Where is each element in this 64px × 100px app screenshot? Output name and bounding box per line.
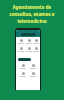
button[interactable] <box>29 72 37 77</box>
button[interactable] <box>25 39 33 44</box>
button[interactable] <box>21 33 36 36</box>
button[interactable] <box>18 58 31 61</box>
button[interactable] <box>17 47 25 52</box>
button[interactable] <box>33 47 39 52</box>
button[interactable] <box>17 39 25 44</box>
button[interactable] <box>33 39 39 44</box>
staticText: Agendamento de consultas, exames e telem… <box>0 4 64 24</box>
button[interactable] <box>25 47 33 52</box>
button[interactable] <box>19 64 27 69</box>
button[interactable] <box>19 72 27 77</box>
button[interactable] <box>29 64 37 69</box>
